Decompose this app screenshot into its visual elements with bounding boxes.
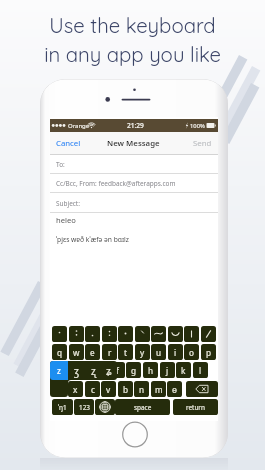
button[interactable]: Switch keyboard <box>95 399 115 415</box>
button[interactable]: i <box>168 344 183 360</box>
staticText: ʐ <box>91 364 96 378</box>
button[interactable]: return <box>173 399 218 415</box>
staticText: 21:29 <box>127 121 144 130</box>
button[interactable]: j <box>160 362 175 378</box>
button[interactable]: w <box>69 344 84 360</box>
button[interactable]: d <box>93 362 108 378</box>
button[interactable]: m <box>151 381 166 397</box>
staticText: m <box>155 384 163 395</box>
button[interactable]: c <box>85 381 100 397</box>
staticText: t <box>124 347 127 358</box>
staticText: i <box>174 347 177 358</box>
staticText: g <box>131 365 137 376</box>
staticText: Subject: <box>56 199 80 208</box>
button[interactable]: Send <box>193 132 212 155</box>
button[interactable]: n <box>134 381 149 397</box>
staticText: l <box>199 365 202 376</box>
button[interactable] <box>52 326 67 342</box>
button[interactable] <box>184 326 199 342</box>
button[interactable] <box>118 326 133 342</box>
staticText: o <box>189 347 194 358</box>
staticText: Cc/Bcc, From: feedback@afterapps.com <box>56 179 176 188</box>
button[interactable]: s <box>77 362 92 378</box>
staticText: y <box>140 347 145 358</box>
staticText: ʑ <box>106 364 112 378</box>
button[interactable]: Delete <box>186 381 218 397</box>
button[interactable]: 123 <box>74 399 94 415</box>
button[interactable]: ɵ <box>167 381 182 397</box>
staticText: New Message <box>107 138 160 149</box>
button[interactable]: y <box>135 344 150 360</box>
button[interactable]: Cc/Bcc, From: feedback@afterapps.com <box>50 173 218 193</box>
staticText: n <box>139 384 145 395</box>
button[interactable]: t <box>118 344 133 360</box>
staticText: Orange <box>68 122 90 130</box>
button[interactable]: ʒ <box>68 361 85 380</box>
staticText: 123 <box>79 403 90 412</box>
button[interactable] <box>85 326 100 342</box>
staticText: u <box>156 347 162 358</box>
staticText: v <box>106 384 111 395</box>
staticText: space <box>134 403 152 412</box>
button[interactable] <box>102 326 117 342</box>
button[interactable] <box>69 326 84 342</box>
staticText: r <box>108 347 112 358</box>
button[interactable]: h <box>143 362 158 378</box>
staticText: q <box>57 347 63 358</box>
staticText: h <box>148 365 154 376</box>
button[interactable]: o <box>184 344 199 360</box>
staticText: w <box>73 347 80 358</box>
staticText: return <box>186 403 205 412</box>
button[interactable]: x <box>68 381 83 397</box>
button[interactable]: r <box>102 344 117 360</box>
button[interactable]: f <box>110 362 125 378</box>
button[interactable] <box>168 326 183 342</box>
staticText: z <box>57 365 61 376</box>
button[interactable] <box>151 326 166 342</box>
staticText: heleo <box>56 215 76 225</box>
staticText: ʒ <box>74 364 79 378</box>
button[interactable]: e <box>85 344 100 360</box>
staticText: ɵ <box>172 384 177 395</box>
staticText: p <box>206 347 212 358</box>
button[interactable]: ʑ <box>101 361 117 380</box>
staticText: ˈŋ1 <box>58 403 67 412</box>
staticText: c <box>91 384 95 395</box>
button[interactable]: space <box>115 399 170 415</box>
staticText: f <box>116 365 119 376</box>
staticText: 100% <box>190 122 205 130</box>
button[interactable]: Cancel <box>56 132 81 155</box>
button[interactable]: l <box>193 362 208 378</box>
staticText: Use the keyboard <box>49 13 216 38</box>
button[interactable]: b <box>118 381 133 397</box>
button[interactable]: ʐ <box>85 361 101 380</box>
staticText: in any app you like <box>44 42 221 67</box>
button[interactable]: To: <box>50 155 218 174</box>
button[interactable]: q <box>52 344 67 360</box>
button[interactable]: u <box>151 344 166 360</box>
button[interactable]: k <box>176 362 191 378</box>
staticText: To: <box>56 160 65 169</box>
staticText: k <box>181 365 186 376</box>
staticText: Send <box>193 138 212 149</box>
button[interactable]: a <box>60 362 75 378</box>
button[interactable] <box>135 326 150 342</box>
staticText: a <box>65 365 70 376</box>
button[interactable]: z <box>50 361 68 380</box>
button[interactable]: g <box>126 362 141 378</box>
staticText: b <box>123 384 129 395</box>
staticText: ˈpjɛs wɐð kˈæfə ən bɑɪlz <box>56 235 129 244</box>
button[interactable]: p <box>201 344 216 360</box>
button[interactable] <box>201 326 216 342</box>
staticText: Cancel <box>56 138 81 149</box>
staticText: j <box>166 365 169 376</box>
staticText: x <box>73 384 78 395</box>
button[interactable]: v <box>101 381 116 397</box>
button[interactable]: Subject: <box>50 193 218 213</box>
button[interactable]: ˈŋ1 <box>52 399 73 415</box>
staticText: e <box>90 347 95 358</box>
